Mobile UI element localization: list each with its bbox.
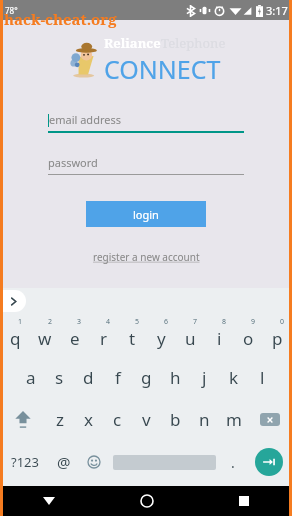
button[interactable]: h [161,356,190,398]
staticText: t [129,327,136,350]
button[interactable]: v [132,398,161,440]
button[interactable]: 9 [234,314,263,356]
staticText: z [56,408,64,431]
staticText: a [26,366,36,389]
staticText: 0 [280,317,285,327]
button[interactable]: 7 [176,314,205,356]
staticText: o [243,327,254,350]
staticText: 3:17 [266,3,288,18]
button[interactable]: 2 [30,314,60,356]
staticText: 5 [135,317,140,327]
staticText: e [70,327,80,350]
button[interactable]: password [48,155,244,175]
button[interactable]: z [45,398,74,440]
staticText: 9 [251,317,256,327]
staticText: . [231,453,235,472]
staticText: p [272,327,283,350]
staticText: j [202,366,207,389]
staticText: n [199,408,210,431]
staticText: q [10,327,21,350]
staticText: k [229,366,239,389]
button[interactable]: g [132,356,161,398]
button[interactable]: Home [98,486,195,516]
staticText: i [217,327,222,350]
button[interactable]: register a new account [87,247,206,267]
staticText: h [170,366,181,389]
button[interactable]: 3 [60,314,89,356]
staticText: r [100,327,108,350]
staticText: hack-cheat.org [4,9,117,29]
staticText: 4 [106,317,111,327]
staticText: email address [49,112,121,127]
button[interactable]: 0 [263,314,292,356]
staticText: password [48,155,98,170]
button[interactable]: login [86,201,206,227]
staticText: g [141,366,152,389]
button[interactable]: Back [0,486,98,516]
button[interactable]: 1 [0,314,30,356]
button[interactable]: d [74,356,103,398]
staticText: ?123 [11,453,39,471]
staticText: 3 [77,317,82,327]
staticText: CONNECT [104,52,221,86]
button[interactable]: f [103,356,132,398]
staticText: Telephone [161,34,226,52]
staticText: d [83,366,94,389]
button[interactable]: Emoji [79,440,109,484]
button[interactable]: Shift [0,398,45,440]
staticText: s [55,366,64,389]
staticText: 78° [5,5,18,16]
button[interactable]: Recent apps [195,486,292,516]
button[interactable]: b [161,398,190,440]
button[interactable]: s [45,356,74,398]
button[interactable]: 4 [89,314,118,356]
staticText: u [185,327,196,350]
button[interactable]: Space [109,440,219,484]
button[interactable]: @ [49,440,79,484]
staticText: 2 [48,317,53,327]
button[interactable]: . [219,440,246,484]
button[interactable]: 8 [205,314,234,356]
button[interactable]: c [103,398,132,440]
staticText: x [84,408,93,431]
button[interactable]: email address [48,112,244,133]
button[interactable]: 6 [147,314,176,356]
button[interactable]: a [16,356,45,398]
staticText: @ [57,452,71,472]
button[interactable]: k [219,356,248,398]
staticText: w [38,327,52,350]
staticText: 1 [18,317,23,327]
staticText: f [115,366,121,389]
button[interactable]: l [248,356,277,398]
button[interactable]: Expand suggestions [0,290,26,312]
staticText: y [157,327,166,350]
button[interactable]: Backspace [248,398,292,440]
button[interactable]: n [190,398,219,440]
button[interactable]: j [190,356,219,398]
staticText: 8 [222,317,227,327]
button[interactable]: Enter [246,440,292,484]
staticText: Reliance [104,34,161,52]
button[interactable]: ?123 [0,440,49,484]
staticText: m [226,408,242,431]
staticText: 6 [164,317,169,327]
staticText: l [260,366,265,389]
staticText: v [142,408,151,431]
button[interactable]: x [74,398,103,440]
staticText: c [113,408,122,431]
staticText: register a new account [93,250,200,264]
button[interactable]: m [219,398,248,440]
staticText: b [170,408,181,431]
button[interactable]: 5 [118,314,147,356]
staticText: 7 [193,317,198,327]
staticText: login [133,207,159,222]
